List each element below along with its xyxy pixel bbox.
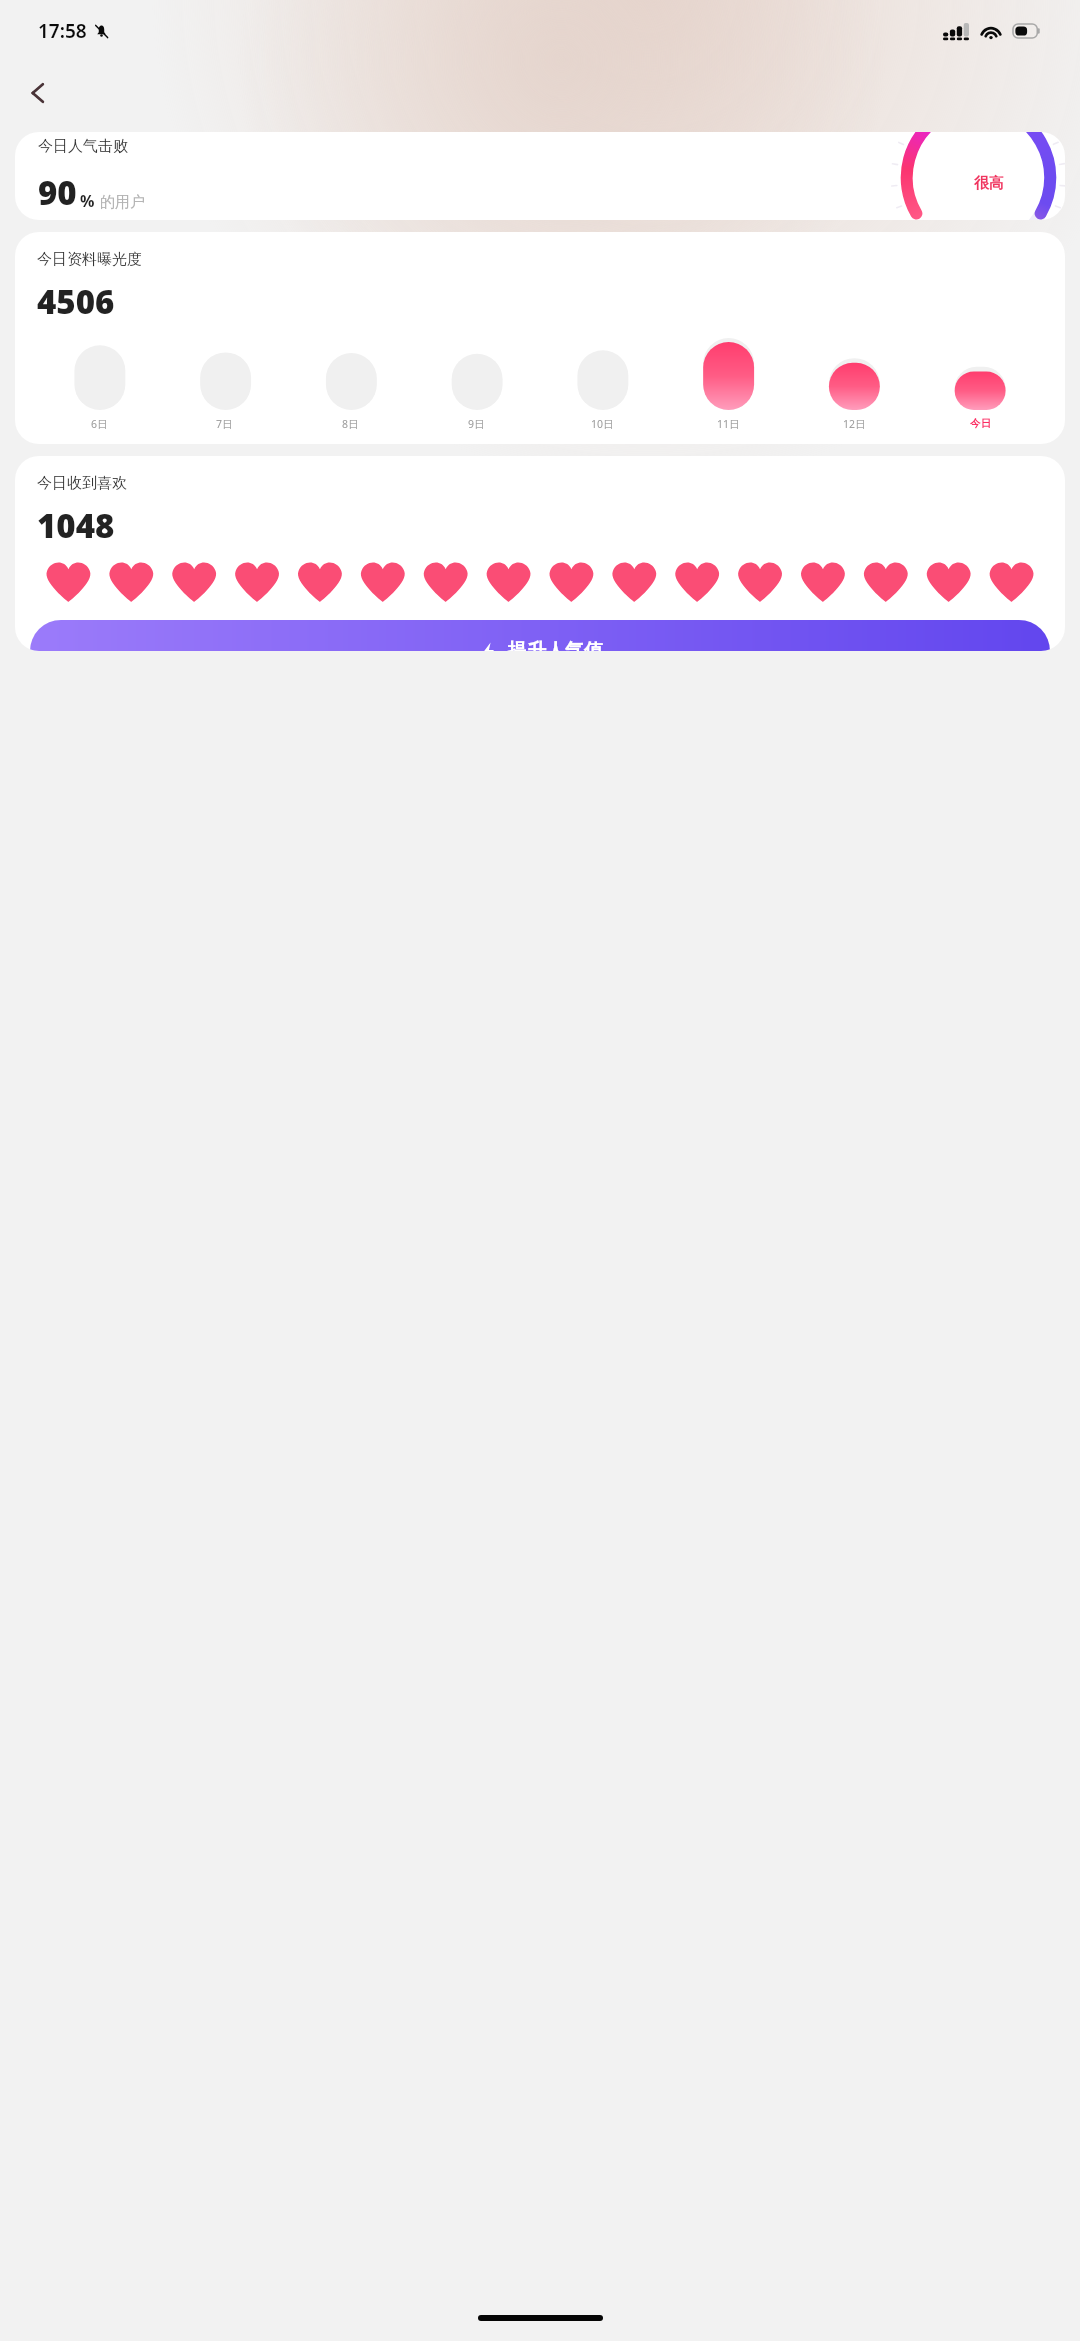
staticText: 很高 — [974, 174, 1004, 193]
staticText: 11日 — [717, 417, 740, 431]
button[interactable]: 提升人气值 — [30, 620, 1050, 651]
staticText: 90 — [38, 170, 77, 215]
staticText: 的用户 — [100, 193, 145, 212]
staticText: 提升人气值 — [508, 639, 603, 651]
button[interactable]: 今日人气击败 — [15, 132, 1065, 220]
staticText: % — [80, 190, 95, 212]
button[interactable]: 今日收到喜欢 — [15, 456, 1065, 651]
staticText: 1048 — [37, 503, 115, 548]
staticText: 6日 — [91, 417, 108, 431]
button[interactable]: 今日资料曝光度 — [15, 232, 1065, 444]
button[interactable]: Back — [14, 69, 62, 117]
staticText: 今日 — [970, 417, 991, 430]
staticText: 10日 — [591, 417, 614, 431]
staticText: 12日 — [843, 417, 866, 431]
staticText: 7日 — [216, 417, 233, 431]
staticText: 4506 — [37, 279, 115, 324]
staticText: 8日 — [342, 417, 359, 431]
staticText: 今日人气击败 — [38, 137, 128, 156]
staticText: 17:58 — [38, 18, 87, 44]
staticText: 今日收到喜欢 — [37, 474, 127, 493]
staticText: 今日资料曝光度 — [37, 250, 142, 269]
staticText: 9日 — [468, 417, 485, 431]
